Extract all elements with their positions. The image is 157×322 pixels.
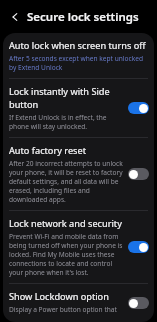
- button[interactable]: Auto lock when screen turns off: [3, 33, 154, 78]
- staticText: After 5 seconds except when kept unlocke…: [9, 54, 149, 72]
- button[interactable]: On: [128, 241, 149, 253]
- staticText: Lock instantly with Side button: [9, 85, 123, 111]
- staticText: Secure lock settings: [27, 9, 139, 25]
- button[interactable]: Off: [128, 168, 149, 180]
- button[interactable]: Back: [7, 9, 23, 25]
- button[interactable]: Lock instantly with Side button: [3, 79, 154, 137]
- button[interactable]: Auto factory reset: [3, 138, 154, 210]
- staticText: Show Lockdown option: [9, 290, 109, 303]
- staticText: Prevent Wi-Fi and mobile data from being…: [9, 232, 123, 277]
- staticText: Auto factory reset: [9, 144, 86, 157]
- button[interactable]: Show Lockdown option: [3, 284, 154, 322]
- staticText: Auto lock when screen turns off: [9, 39, 146, 52]
- staticText: If Extend Unlock is in effect, the phone…: [9, 113, 123, 131]
- staticText: After 20 incorrect attempts to unlock yo…: [9, 159, 123, 204]
- button[interactable]: On: [128, 102, 149, 114]
- staticText: Display a Power button option that turns…: [9, 305, 123, 316]
- staticText: Lock network and security: [9, 217, 122, 230]
- button[interactable]: Lock network and security: [3, 211, 154, 283]
- button[interactable]: Off: [128, 297, 149, 309]
